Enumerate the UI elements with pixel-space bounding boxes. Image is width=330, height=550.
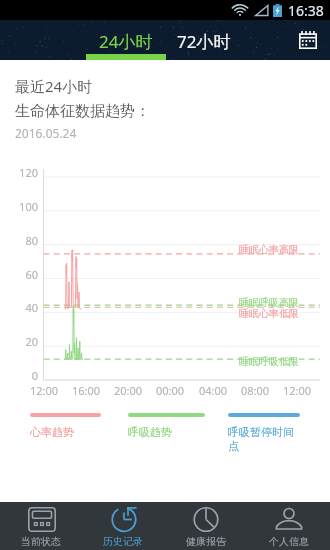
staticText: 04:00 [193, 383, 233, 398]
staticText: 16:38 [288, 1, 324, 20]
staticText: 健康报告 [186, 535, 226, 548]
staticText: 历史记录 [103, 535, 143, 548]
button[interactable]: 心率趋势 [30, 413, 101, 439]
button[interactable]: 历史记录 [82, 502, 164, 550]
button[interactable]: 呼吸暂停时间点 [228, 413, 300, 453]
staticText: 60 [0, 267, 38, 282]
staticText: 20:00 [108, 383, 148, 398]
staticText: 100 [0, 199, 38, 214]
staticText: 生命体征数据趋势： [15, 102, 150, 121]
staticText: 24小时 [99, 30, 153, 53]
button[interactable]: 个人信息 [247, 502, 330, 550]
button[interactable]: 24小时 [86, 24, 166, 58]
button[interactable]: 当前状态 [0, 502, 82, 550]
button[interactable]: 呼吸趋势 [128, 413, 205, 439]
staticText: 睡眠心率低限 [239, 307, 299, 320]
staticText: 2016.05.24 [15, 125, 77, 141]
staticText: 0 [0, 368, 38, 383]
staticText: 最近24小时 [15, 76, 93, 96]
staticText: 呼吸趋势 [128, 425, 172, 439]
button[interactable]: 健康报告 [164, 502, 247, 550]
staticText: 72小时 [177, 30, 231, 53]
staticText: 08:00 [235, 383, 275, 398]
staticText: 16:00 [66, 383, 106, 398]
staticText: 00:00 [150, 383, 190, 398]
staticText: 呼吸暂停时间点 [228, 425, 300, 453]
staticText: 80 [0, 233, 38, 248]
staticText: 个人信息 [269, 535, 309, 548]
button[interactable]: Pick date [295, 27, 321, 53]
staticText: 40 [0, 300, 38, 315]
staticText: 12:00 [24, 383, 64, 398]
button[interactable]: 72小时 [166, 24, 242, 58]
staticText: 20 [0, 334, 38, 349]
staticText: 睡眠呼吸低限 [239, 355, 299, 368]
staticText: 12:00 [277, 383, 317, 398]
staticText: 当前状态 [21, 535, 61, 548]
staticText: 120 [0, 165, 38, 180]
staticText: 睡眠呼吸高限 [239, 296, 299, 309]
staticText: 睡眠心率高限 [239, 243, 299, 256]
staticText: 心率趋势 [30, 425, 74, 439]
